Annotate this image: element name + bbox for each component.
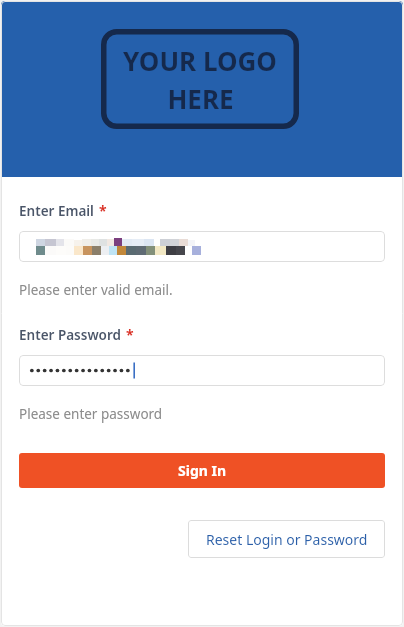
staticText: *: [99, 201, 107, 220]
button[interactable]: [19, 231, 385, 262]
staticText: Enter Password: [19, 326, 121, 344]
staticText: Reset Login or Password: [206, 530, 368, 549]
staticText: HERE: [167, 81, 234, 116]
staticText: *: [126, 325, 134, 344]
button[interactable]: [19, 355, 385, 386]
button[interactable]: Sign In: [19, 453, 385, 488]
staticText: Please enter valid email.: [19, 281, 173, 299]
button[interactable]: Reset Login or Password: [188, 520, 385, 558]
staticText: Sign In: [178, 461, 227, 480]
staticText: Enter Email: [19, 202, 94, 220]
staticText: YOUR LOGO: [123, 43, 277, 78]
staticText: Please enter password: [19, 405, 163, 423]
